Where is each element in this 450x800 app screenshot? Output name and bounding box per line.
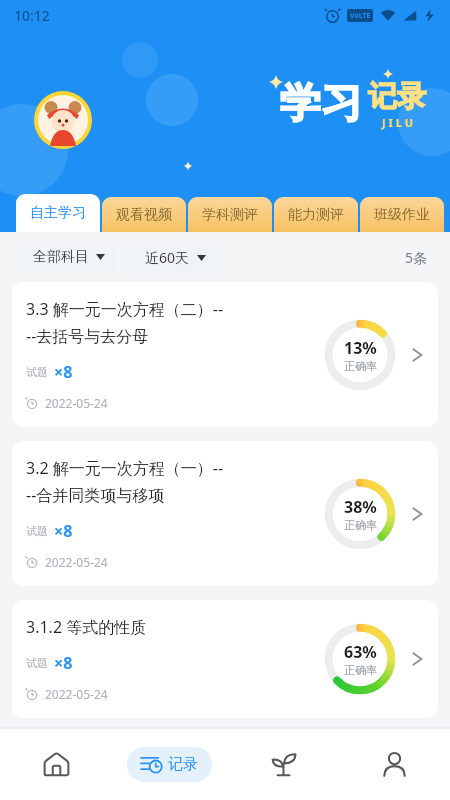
button[interactable]: 自主学习 (16, 194, 100, 232)
button[interactable]: Avatar (34, 91, 92, 149)
other: Open detail (406, 503, 428, 525)
staticText: 3.3 解一元一次方程（二）-- (26, 298, 224, 320)
staticText: 2022-05-24 (45, 686, 108, 702)
staticText: 正确率 (344, 359, 377, 373)
staticText: 试题 (26, 365, 48, 379)
button[interactable]: 学科测评 (188, 197, 272, 232)
button[interactable]: 近60天 (134, 242, 217, 273)
staticText: 观看视频 (116, 206, 172, 224)
staticText: --去括号与去分母 (26, 325, 149, 347)
button[interactable]: Profile (354, 737, 434, 791)
staticText: 班级作业 (374, 206, 430, 224)
staticText: 全部科目 (33, 248, 89, 266)
button[interactable]: 全部科目 (22, 242, 116, 272)
staticText: 5条 (405, 248, 428, 267)
staticText: 学习 (280, 78, 362, 130)
staticText: 学科测评 (202, 206, 258, 224)
button[interactable]: Home (16, 737, 96, 791)
other: Open detail (406, 344, 428, 366)
staticText: 自主学习 (30, 204, 86, 222)
staticText: 2022-05-24 (45, 395, 108, 411)
staticText: 10:12 (14, 6, 50, 25)
staticText: 能力测评 (288, 206, 344, 224)
staticText: 近60天 (145, 248, 190, 267)
staticText: ×8 (54, 652, 73, 674)
button[interactable]: 3.1.2 等式的性质 (12, 600, 438, 718)
staticText: 正确率 (344, 518, 377, 532)
button[interactable]: Growth (243, 737, 323, 791)
staticText: ×8 (54, 361, 73, 383)
button[interactable]: 3.3 解一元一次方程（二）-- (12, 282, 438, 427)
staticText: 试题 (26, 524, 48, 538)
staticText: 记录 (368, 78, 426, 115)
button[interactable]: 能力测评 (274, 197, 358, 232)
staticText: 13% (344, 337, 377, 359)
staticText: 3.2 解一元一次方程（一）-- (26, 457, 224, 479)
staticText: ×8 (54, 520, 73, 542)
staticText: J I L U (382, 115, 413, 130)
staticText: 试题 (26, 656, 48, 670)
button[interactable]: 3.2 解一元一次方程（一）-- (12, 441, 438, 586)
staticText: VoLTE (350, 11, 371, 21)
button[interactable]: 观看视频 (102, 197, 186, 232)
staticText: 正确率 (344, 663, 377, 677)
staticText: 38% (344, 496, 377, 518)
button[interactable]: 记录 (127, 747, 212, 782)
staticText: --合并同类项与移项 (26, 484, 165, 506)
staticText: 记录 (168, 755, 198, 774)
staticText: 2022-05-24 (45, 554, 108, 570)
staticText: 63% (344, 641, 377, 663)
other: Open detail (406, 648, 428, 670)
button[interactable]: 班级作业 (360, 197, 444, 232)
staticText: 3.1.2 等式的性质 (26, 616, 147, 638)
